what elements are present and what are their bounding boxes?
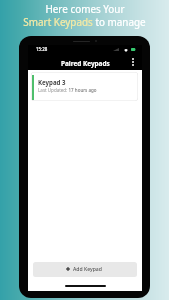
staticText: Keypad 3 [38, 78, 66, 86]
staticText: Here comes Your [45, 2, 125, 15]
staticText: Smart Keypads to manage [23, 15, 146, 28]
staticText: 15:28 [36, 46, 48, 52]
button[interactable]: Add Keypad [33, 262, 137, 277]
staticText: Paired Keypads [61, 59, 110, 68]
staticText: Last Updated: 17 hours ago [38, 87, 97, 93]
button[interactable]: More options [129, 56, 137, 67]
button[interactable]: Keypad 3 [31, 72, 138, 101]
staticText: Add Keypad [73, 266, 102, 273]
